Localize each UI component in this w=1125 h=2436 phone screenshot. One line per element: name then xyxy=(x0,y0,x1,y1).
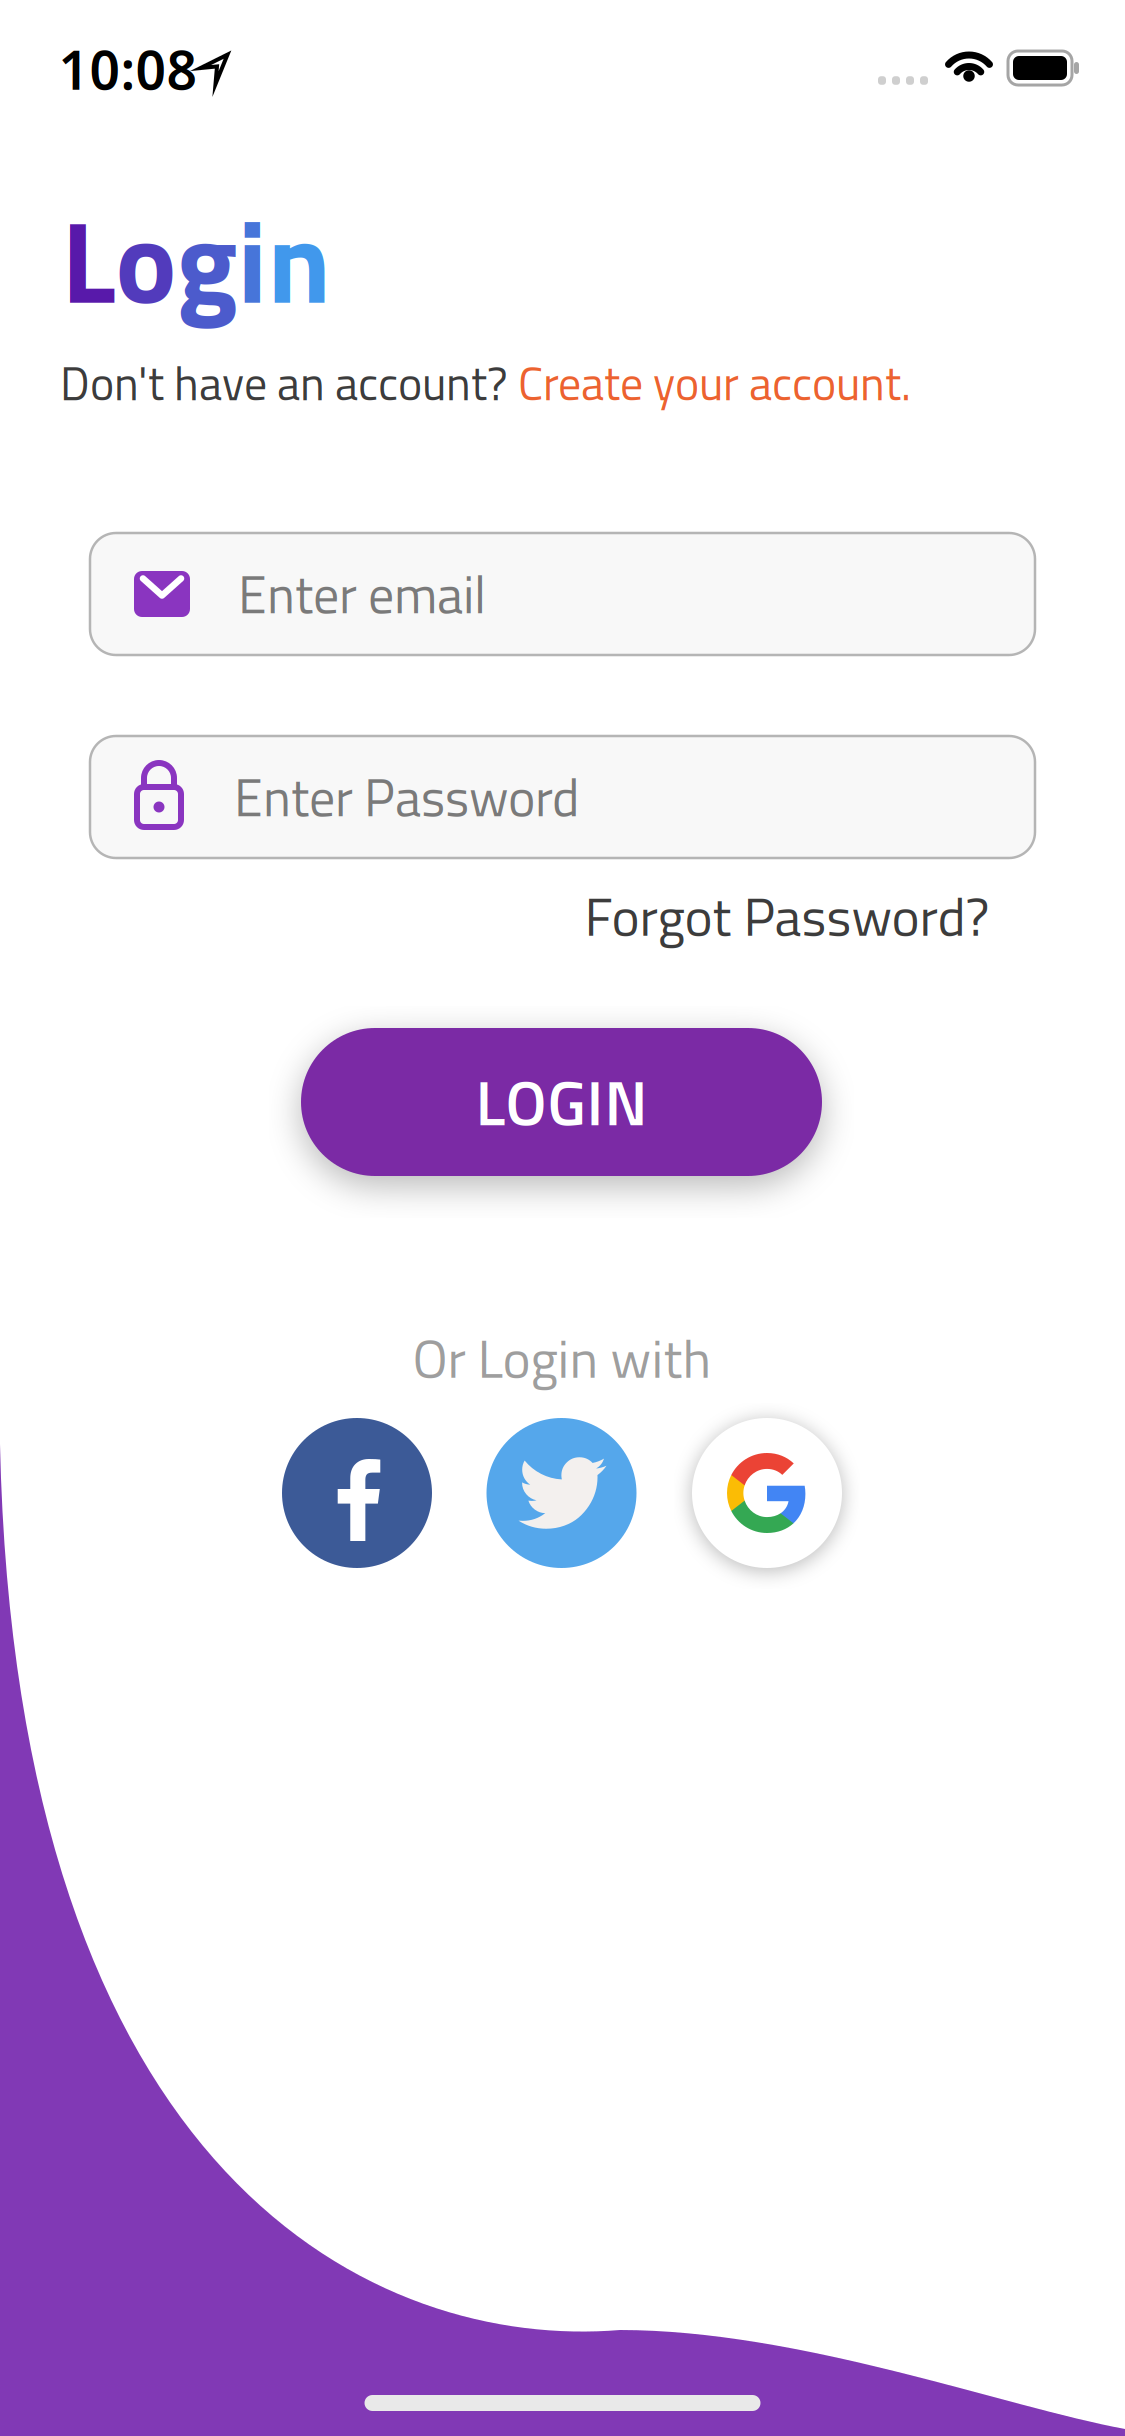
staticText: 10:08 xyxy=(58,34,197,104)
staticText: i xyxy=(237,173,267,347)
button[interactable]: Create your account. xyxy=(518,348,911,418)
staticText: Don't have an account? xyxy=(60,348,518,418)
button[interactable]: LOGIN xyxy=(301,1028,822,1176)
staticText: n xyxy=(267,173,330,347)
button[interactable]: Login with Twitter xyxy=(486,1418,636,1568)
button[interactable]: Login with Facebook xyxy=(282,1418,432,1568)
staticText: L xyxy=(61,173,115,347)
staticText: Create your account. xyxy=(518,348,911,418)
button[interactable]: Enter email xyxy=(90,533,1035,655)
staticText: Enter Password xyxy=(234,757,580,837)
button[interactable]: Forgot Password? xyxy=(584,875,989,956)
staticText: Forgot Password? xyxy=(584,875,989,956)
button[interactable]: Enter Password xyxy=(90,736,1035,858)
staticText: Or Login with xyxy=(412,1317,711,1398)
staticText: Enter email xyxy=(238,554,486,634)
button[interactable]: Login with Google xyxy=(692,1418,842,1568)
staticText: g xyxy=(176,173,237,347)
staticText: o xyxy=(115,173,176,347)
staticText: LOGIN xyxy=(475,1054,647,1150)
